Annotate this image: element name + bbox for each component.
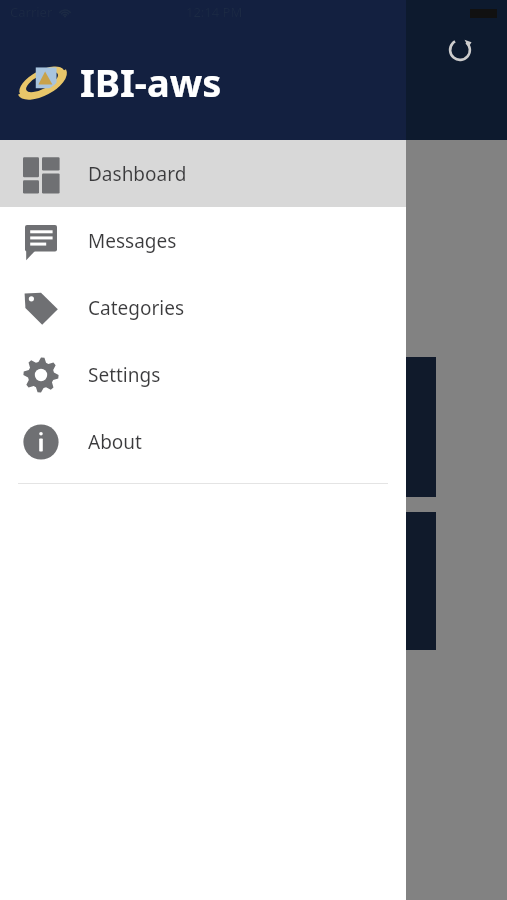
button[interactable]: Categories bbox=[0, 274, 406, 341]
button[interactable]: 12 bbox=[366, 357, 436, 497]
button[interactable]: 30 bbox=[366, 512, 436, 650]
button[interactable]: About bbox=[0, 408, 406, 475]
staticText: Messages bbox=[88, 228, 177, 254]
button[interactable]: Messages bbox=[0, 207, 406, 274]
staticText: IBI-aws bbox=[80, 56, 222, 108]
staticText: 12 bbox=[366, 357, 436, 497]
button[interactable]: Refresh bbox=[437, 27, 483, 73]
staticText: Dashboard bbox=[88, 161, 187, 187]
staticText: 30 bbox=[366, 512, 436, 650]
button[interactable]: Dashboard bbox=[0, 140, 406, 207]
staticText: Categories bbox=[88, 295, 184, 321]
staticText: Settings bbox=[88, 362, 161, 388]
staticText: About bbox=[88, 429, 142, 455]
button[interactable]: Settings bbox=[0, 341, 406, 408]
